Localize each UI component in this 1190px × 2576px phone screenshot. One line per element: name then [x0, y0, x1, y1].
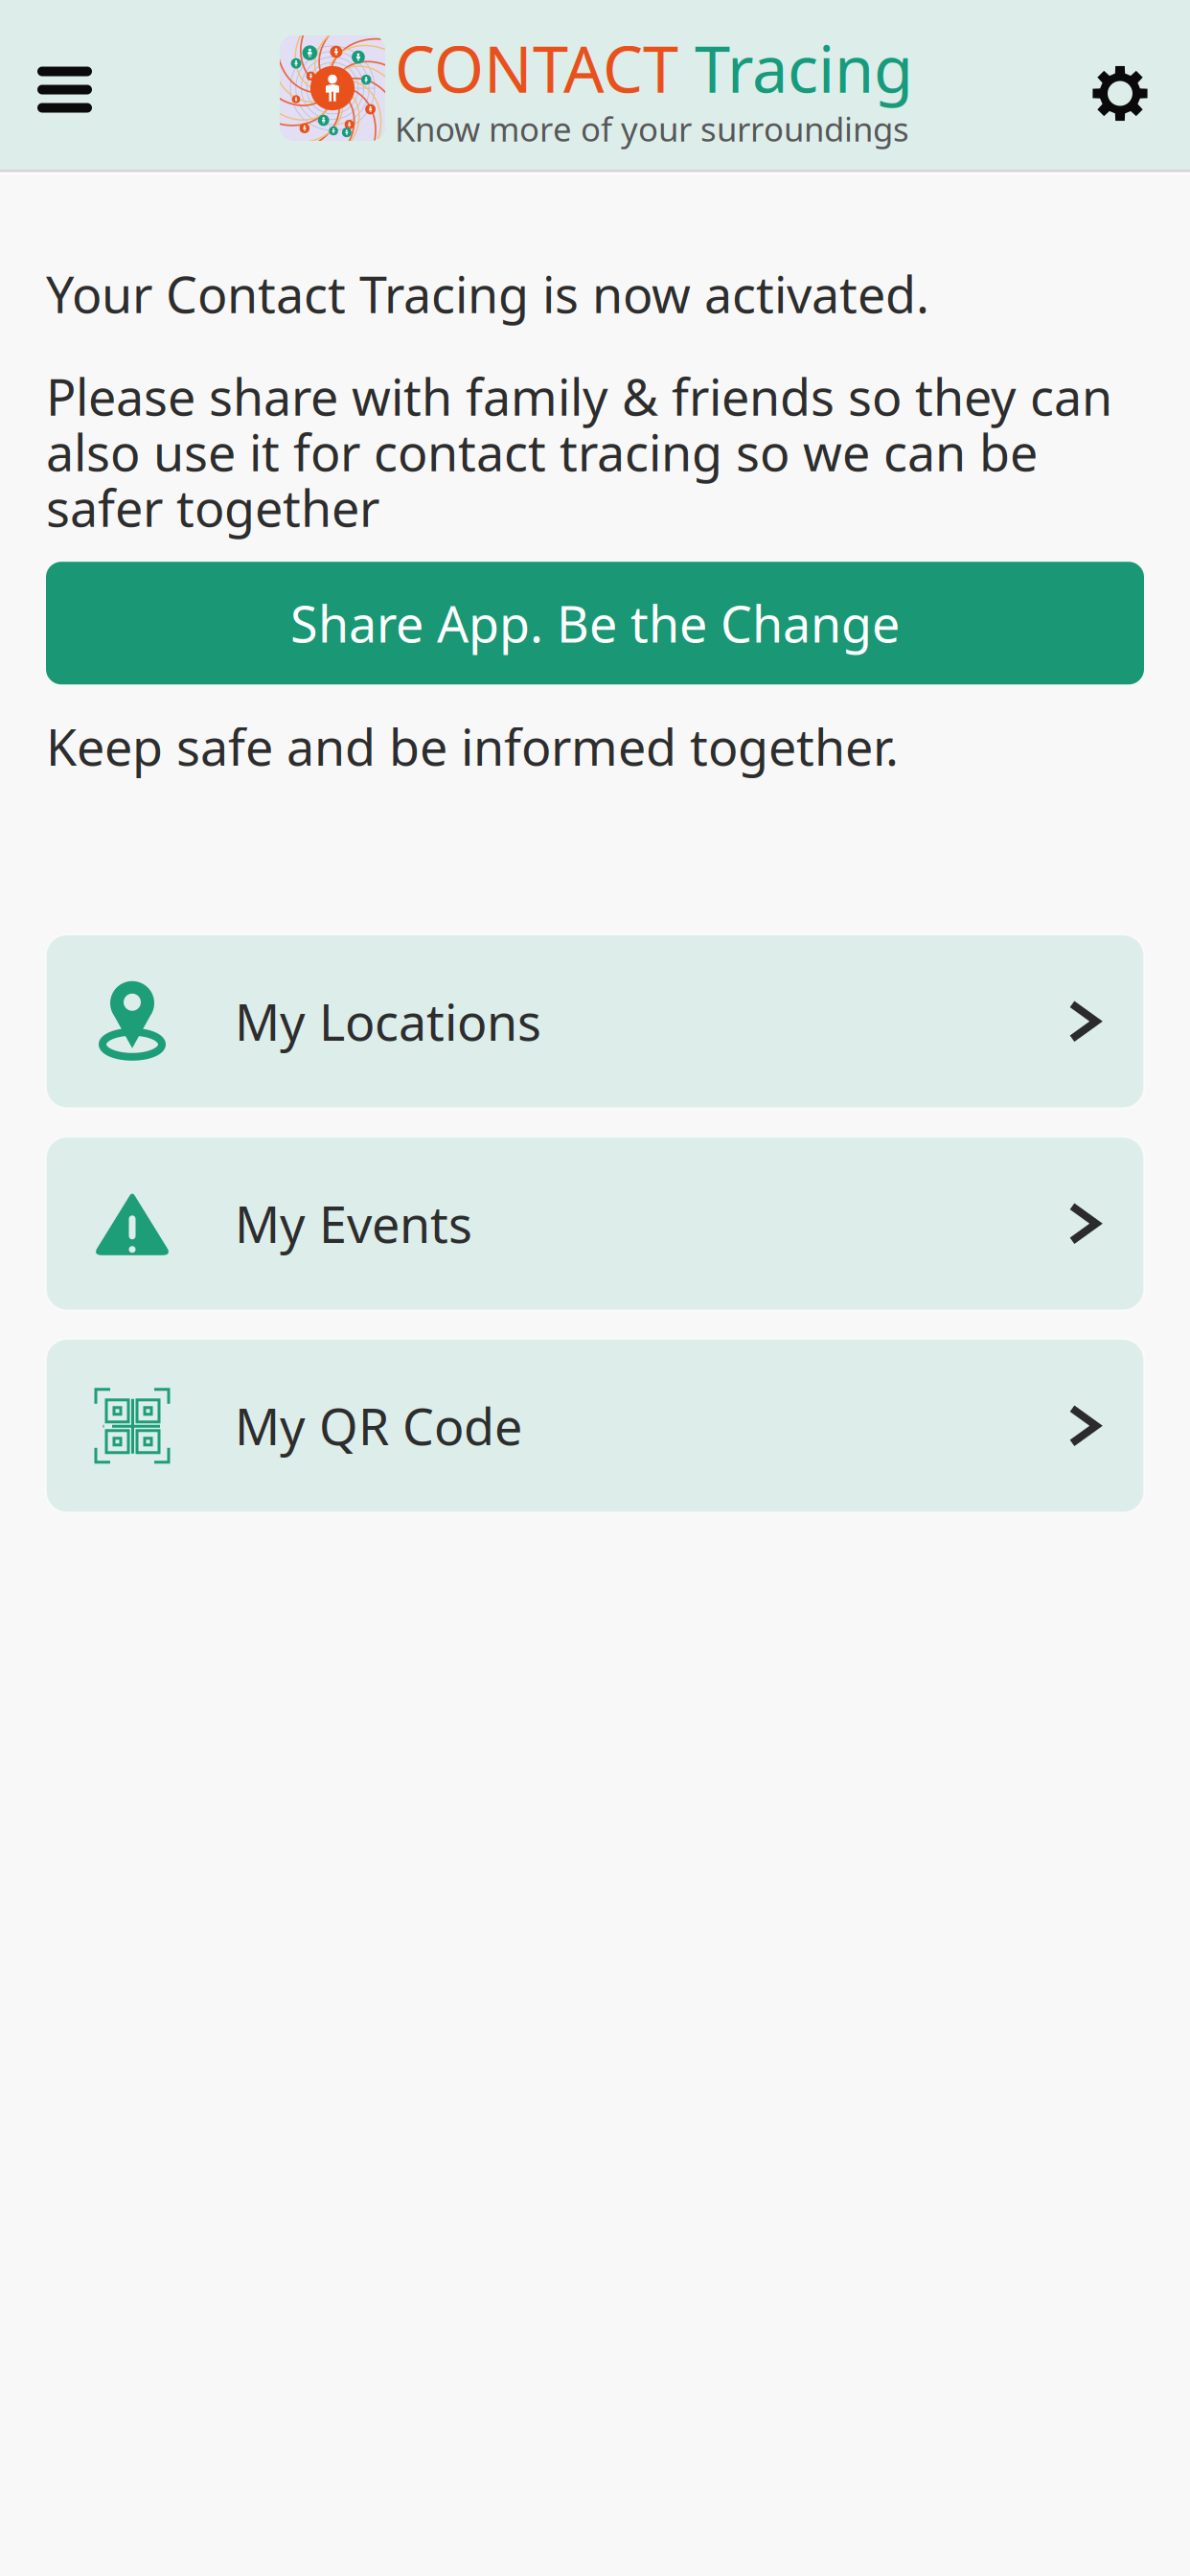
staticText: also use it for contact tracing so we ca… [46, 419, 1038, 485]
staticText: safer together [46, 475, 379, 541]
staticText: My Locations [235, 988, 541, 1054]
button[interactable]: My QR Code [46, 1339, 1144, 1513]
staticText: Please share with family & friends so th… [46, 363, 1112, 430]
staticText: Keep safe and be informed together. [46, 713, 899, 779]
staticText: Share App. Be the Change [290, 590, 900, 656]
button[interactable]: Share App. Be the Change [46, 562, 1144, 684]
staticText: My Events [235, 1190, 472, 1257]
button[interactable]: Settings [1064, 0, 1190, 170]
staticText: My QR Code [235, 1393, 522, 1459]
staticText: Your Contact Tracing is now activated. [46, 261, 929, 327]
staticText: Tracing [678, 26, 913, 110]
staticText: CONTACT [395, 26, 678, 110]
button[interactable]: Menu [0, 0, 129, 170]
staticText: Know more of your surroundings [395, 107, 909, 151]
button[interactable]: My Locations [46, 935, 1144, 1108]
button[interactable]: My Events [46, 1137, 1144, 1310]
